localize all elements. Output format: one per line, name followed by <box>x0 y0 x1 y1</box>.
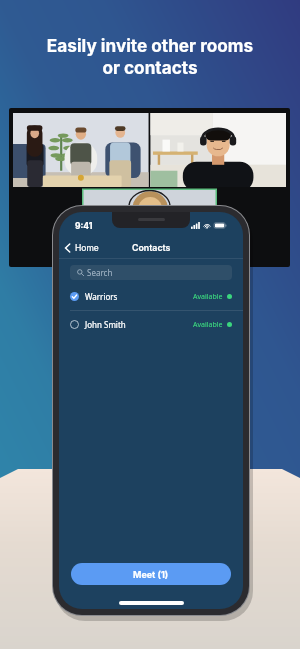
staticText: Available <box>193 320 223 330</box>
staticText: Contacts <box>132 242 171 253</box>
button[interactable]: Home <box>59 240 105 256</box>
staticText: Warriors <box>85 291 118 302</box>
staticText: Search <box>87 267 113 278</box>
button[interactable]: John Smith <box>59 311 243 338</box>
button[interactable]: Warriors <box>59 283 243 310</box>
staticText: 9:41 <box>75 221 93 231</box>
staticText: Easily invite other rooms or contacts <box>0 35 300 78</box>
button[interactable]: Search <box>70 265 232 280</box>
staticText: Home <box>75 243 99 253</box>
button[interactable]: Meet (1) <box>71 563 231 585</box>
staticText: Meet (1) <box>133 569 169 580</box>
staticText: Available <box>193 292 223 302</box>
staticText: John Smith <box>85 319 126 330</box>
